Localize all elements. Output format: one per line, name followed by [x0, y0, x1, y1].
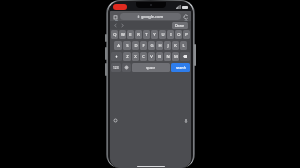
- button[interactable]: F: [140, 41, 147, 50]
- button[interactable]: O: [175, 30, 182, 39]
- button[interactable]: V: [148, 52, 155, 61]
- staticText: 123: [113, 66, 119, 70]
- staticText: B: [158, 54, 161, 60]
- staticText: K: [174, 43, 177, 49]
- staticText: U: [161, 32, 165, 38]
- staticText: space: [146, 65, 156, 70]
- button[interactable]: R: [135, 30, 142, 39]
- button[interactable]: Dictation: [183, 118, 188, 123]
- button[interactable]: M: [172, 52, 179, 61]
- other: Recording: [113, 4, 127, 10]
- button[interactable]: Done: [172, 22, 188, 29]
- staticText: H: [158, 43, 162, 49]
- button[interactable]: Z: [123, 52, 131, 61]
- button[interactable]: D: [132, 41, 139, 50]
- button[interactable]: Next: [120, 23, 125, 28]
- staticText: L: [182, 43, 185, 49]
- staticText: I: [170, 32, 172, 38]
- button[interactable]: W: [119, 30, 126, 39]
- button[interactable]: N: [164, 52, 171, 61]
- staticText: D: [134, 43, 138, 49]
- staticText: Q: [113, 32, 117, 38]
- staticText: C: [142, 54, 145, 60]
- staticText: Z: [126, 54, 129, 60]
- staticText: J: [167, 43, 169, 49]
- button[interactable]: Previous: [113, 23, 118, 28]
- staticText: P: [185, 32, 188, 38]
- staticText: V: [150, 54, 153, 60]
- button[interactable]: Y: [151, 30, 158, 39]
- staticText: Y: [153, 32, 156, 38]
- button[interactable]: E: [127, 30, 134, 39]
- button[interactable]: U: [159, 30, 166, 39]
- staticText: A: [117, 43, 120, 49]
- button[interactable]: google.com: [120, 13, 181, 20]
- button[interactable]: search: [171, 63, 190, 72]
- staticText: E: [129, 32, 132, 38]
- button[interactable]: L: [180, 41, 187, 50]
- button[interactable]: Emoji keyboard: [113, 118, 118, 123]
- button[interactable]: Backspace: [180, 52, 190, 61]
- staticText: Done: [175, 23, 185, 28]
- button[interactable]: A: [114, 41, 122, 50]
- button[interactable]: T: [143, 30, 150, 39]
- staticText: T: [145, 32, 148, 38]
- button[interactable]: Emoji: [122, 63, 131, 72]
- staticText: G: [150, 43, 154, 49]
- staticText: X: [134, 54, 137, 60]
- button[interactable]: Reload: [182, 13, 189, 20]
- button[interactable]: B: [156, 52, 163, 61]
- button[interactable]: K: [172, 41, 179, 50]
- button[interactable]: X: [132, 52, 139, 61]
- button[interactable]: I: [167, 30, 174, 39]
- button[interactable]: H: [156, 41, 163, 50]
- staticText: M: [174, 54, 178, 60]
- staticText: R: [137, 32, 140, 38]
- button[interactable]: space: [132, 63, 170, 72]
- button[interactable]: Shift: [111, 52, 122, 61]
- staticText: O: [177, 32, 181, 38]
- staticText: N: [166, 54, 170, 60]
- button[interactable]: P: [183, 30, 190, 39]
- button[interactable]: G: [148, 41, 155, 50]
- button[interactable]: S: [123, 41, 131, 50]
- button[interactable]: C: [140, 52, 147, 61]
- staticText: search: [176, 66, 186, 70]
- staticText: W: [121, 32, 125, 38]
- button[interactable]: Tabs: [112, 13, 119, 20]
- button[interactable]: J: [164, 41, 171, 50]
- staticText: F: [142, 43, 145, 49]
- button[interactable]: Numbers: [111, 63, 121, 72]
- staticText: S: [126, 43, 129, 49]
- button[interactable]: Q: [111, 30, 118, 39]
- staticText: google.com: [141, 14, 164, 19]
